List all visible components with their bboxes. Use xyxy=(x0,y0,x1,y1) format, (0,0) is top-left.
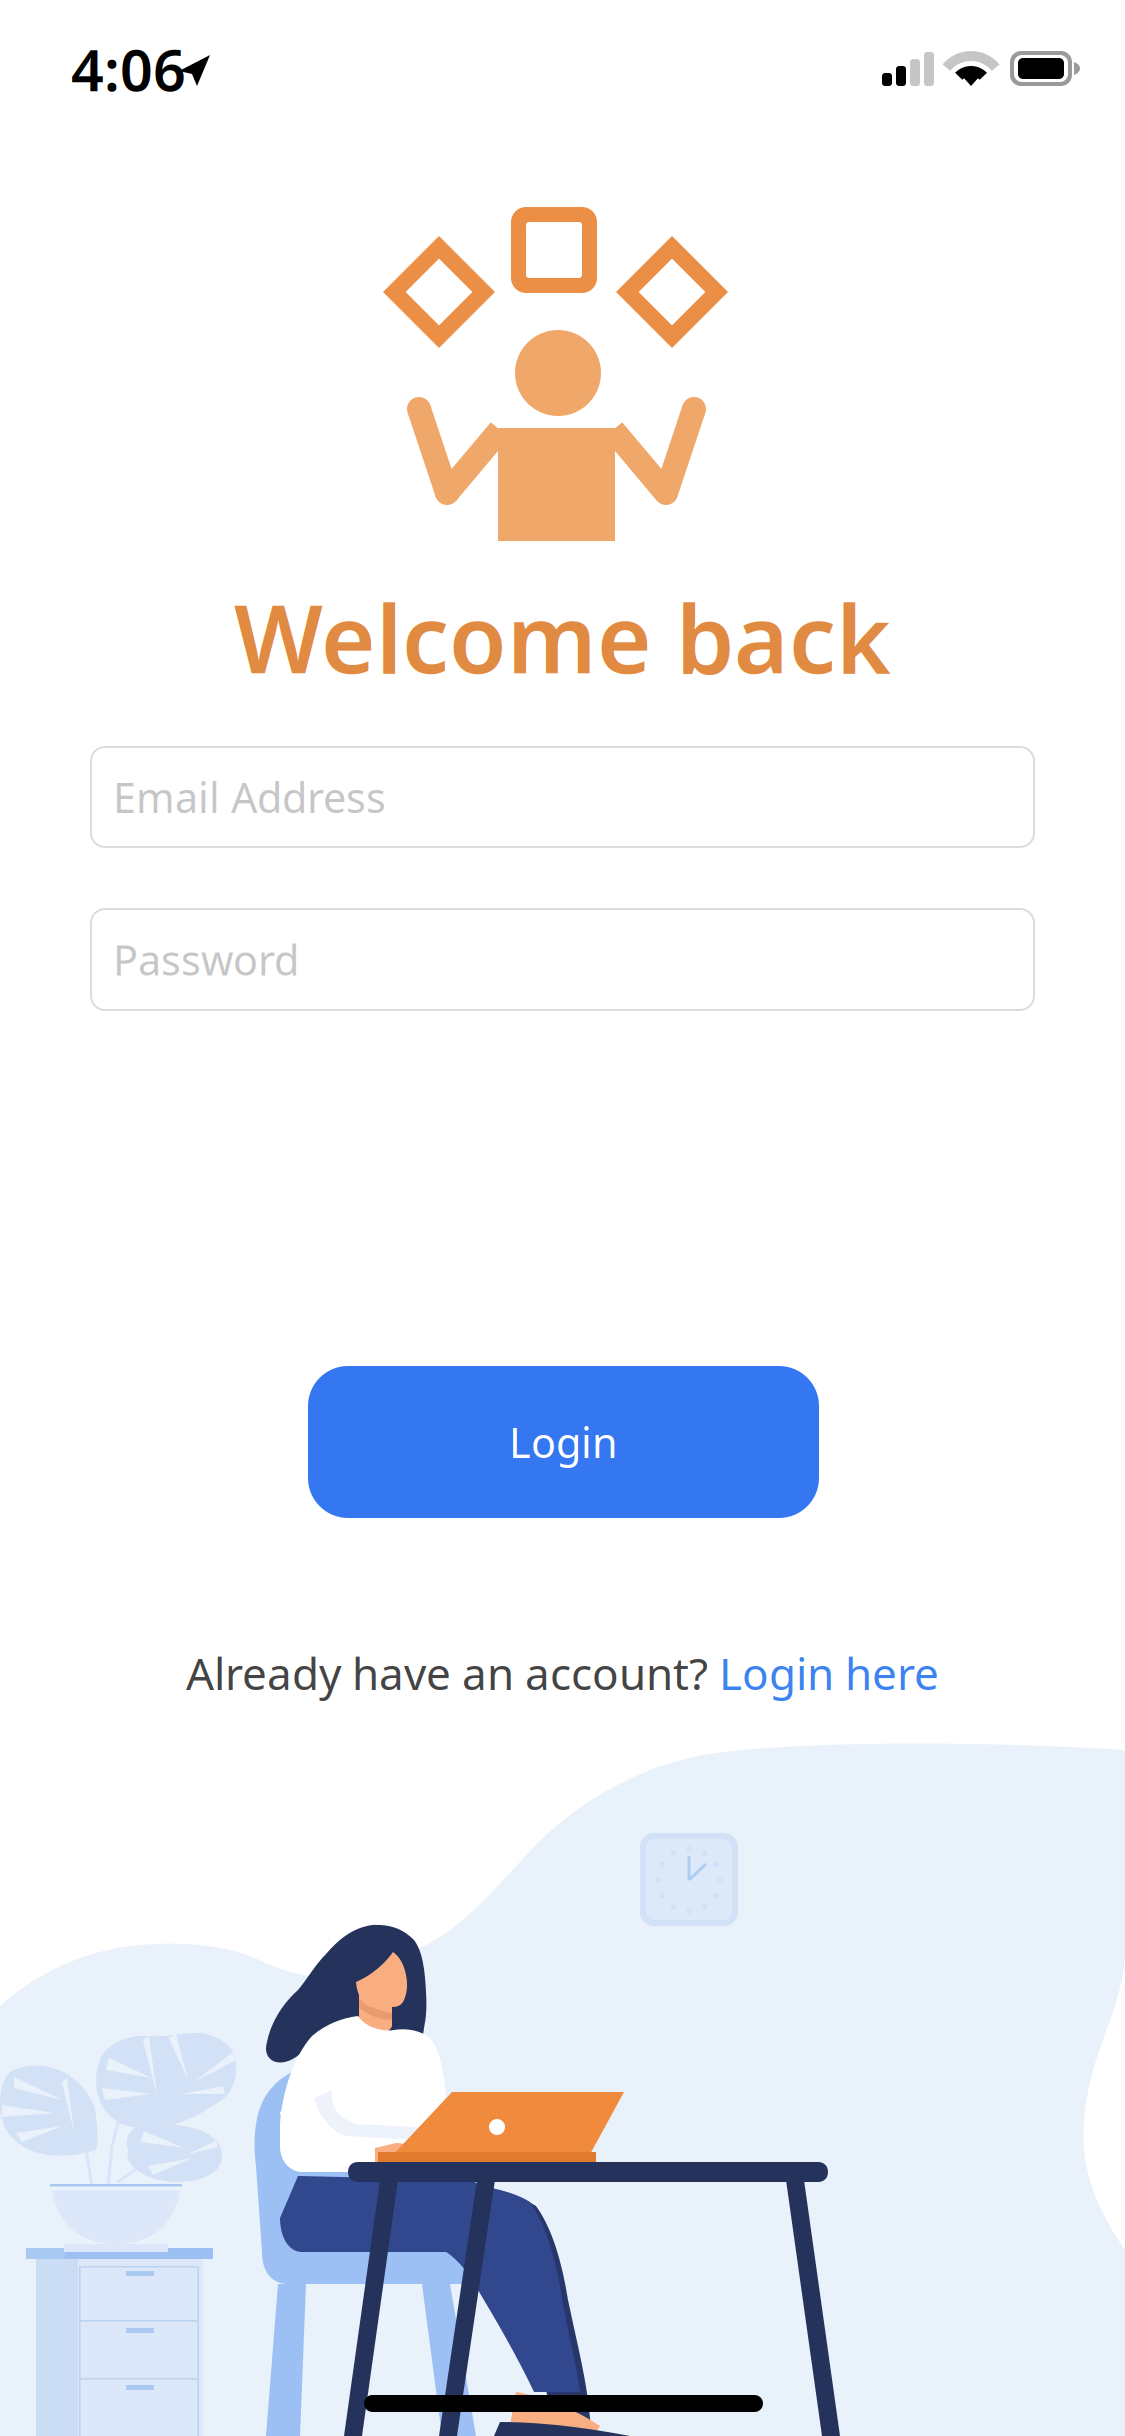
staticText: Email Address xyxy=(113,770,386,824)
button[interactable]: Email Address xyxy=(91,747,1034,847)
staticText: 4:06 xyxy=(71,31,186,107)
staticText: Login here xyxy=(719,1644,939,1702)
staticText: Already have an account? xyxy=(186,1644,719,1702)
staticText: Welcome back xyxy=(234,575,891,699)
staticText: Password xyxy=(113,932,299,987)
button[interactable]: Password xyxy=(91,909,1034,1010)
button[interactable]: Login here xyxy=(719,1644,939,1702)
button[interactable]: Login xyxy=(308,1366,819,1518)
staticText: Login xyxy=(509,1415,618,1469)
